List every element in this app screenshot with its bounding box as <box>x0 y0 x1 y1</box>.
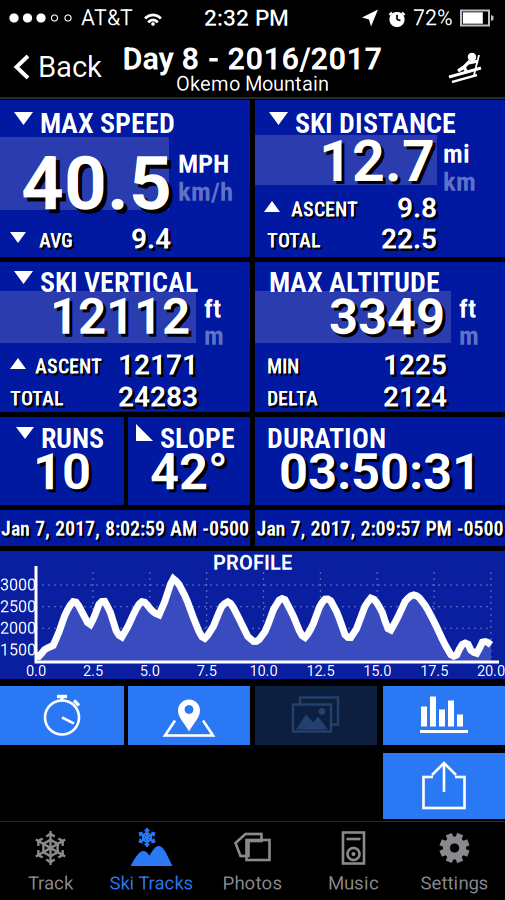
staticText: 9.8 <box>397 192 437 224</box>
staticText: 1225 <box>383 349 447 381</box>
staticText: 3349 <box>329 287 445 347</box>
staticText: 9.4 <box>131 223 171 255</box>
staticText: MAX SPEED <box>40 107 175 140</box>
staticText: 40.5 <box>25 144 176 231</box>
staticText: 2:32 PM <box>204 5 289 31</box>
staticText: 12.7 <box>319 128 435 195</box>
staticText: 72% <box>413 5 453 30</box>
staticText: RUNS <box>41 422 104 455</box>
staticText: ASCENT <box>293 200 360 223</box>
staticText: Jan 7, 2017, 8:02:59 AM -0500 <box>1 517 249 541</box>
staticText: TOTAL <box>267 229 321 252</box>
staticText: DURATION <box>267 422 386 455</box>
staticText: TOTAL <box>12 389 66 412</box>
staticText: 7.5 <box>197 662 217 680</box>
staticText: 24283 <box>118 381 198 413</box>
staticText: DELTA <box>269 389 320 412</box>
staticText: 0.0 <box>26 662 46 680</box>
staticText: Jan 7, 2017, 2:09:57 PM -0500 <box>258 519 505 543</box>
staticText: 3000 <box>0 576 36 594</box>
staticText: MIN <box>269 357 301 380</box>
staticText: TOTAL <box>10 387 64 410</box>
button[interactable]: Music <box>303 822 404 900</box>
button[interactable]: Share <box>383 753 505 819</box>
staticText: 10 <box>33 442 91 502</box>
button[interactable]: Map <box>128 686 250 745</box>
staticText: 15.0 <box>363 662 391 680</box>
staticText: ASCENT <box>291 198 358 221</box>
staticText: 12171 <box>120 351 200 384</box>
staticText: 12171 <box>118 349 198 381</box>
staticText: 12112 <box>53 291 193 349</box>
staticText: Jan 7, 2017, 2:09:57 PM -0500 <box>256 517 503 541</box>
staticText: km/h <box>178 176 233 207</box>
staticText: AT&T <box>81 5 133 30</box>
staticText: Track <box>28 872 73 894</box>
button[interactable]: Photos <box>202 822 303 900</box>
staticText: 2124 <box>385 383 449 416</box>
staticText: 10 <box>36 445 94 505</box>
staticText: AVG <box>41 231 75 254</box>
staticText: 12.5 <box>306 662 334 680</box>
staticText: Back <box>38 50 102 84</box>
staticText: 17.5 <box>420 662 448 680</box>
staticText: mi <box>443 138 470 169</box>
staticText: ft <box>204 293 221 324</box>
staticText: MAX ALTITUDE <box>269 266 440 299</box>
staticText: 03:50:31 <box>279 442 481 502</box>
staticText: Ski Tracks <box>109 872 193 894</box>
staticText: Jan 7, 2017, 8:02:59 AM -0500 <box>3 519 251 543</box>
button[interactable]: Settings <box>404 822 505 900</box>
staticText: ASCENT <box>35 355 102 378</box>
staticText: 24283 <box>120 383 200 416</box>
staticText: Okemo Mountain <box>176 72 329 96</box>
staticText: MPH <box>178 148 229 179</box>
button[interactable]: Charts <box>383 686 505 745</box>
staticText: 03:50:31 <box>282 445 484 505</box>
staticText: 3349 <box>332 290 448 350</box>
staticText: 12112 <box>50 288 190 346</box>
staticText: 42° <box>153 445 231 505</box>
staticText: 2124 <box>383 381 447 413</box>
staticText: 1500 <box>0 641 36 659</box>
button[interactable]: Back <box>0 36 114 98</box>
button[interactable]: Photos <box>255 686 377 745</box>
staticText: km <box>443 166 476 197</box>
button[interactable]: Statistics <box>0 686 124 745</box>
staticText: 2000 <box>0 619 36 638</box>
staticText: 20.0 <box>477 662 505 680</box>
staticText: 9.8 <box>399 194 439 227</box>
staticText: MIN <box>267 355 299 378</box>
staticText: SLOPE <box>160 422 235 455</box>
staticText: m <box>459 320 479 351</box>
staticText: 12.7 <box>322 131 438 198</box>
staticText: 10.0 <box>249 662 277 680</box>
staticText: Day 8 - 2016/2017 <box>122 41 382 77</box>
button[interactable]: Ski Tracks <box>101 822 202 900</box>
staticText: ft <box>459 293 476 324</box>
staticText: Music <box>328 872 379 894</box>
staticText: 2500 <box>0 597 36 616</box>
staticText: 42° <box>150 442 228 502</box>
staticText: TOTAL <box>269 231 323 254</box>
staticText: SKI VERTICAL <box>40 266 198 299</box>
button[interactable]: Track <box>0 822 101 900</box>
staticText: Photos <box>222 872 282 894</box>
staticText: m <box>204 320 224 351</box>
staticText: 5.0 <box>140 662 160 680</box>
staticText: AVG <box>39 229 73 252</box>
button[interactable]: Ski run <box>445 36 505 98</box>
staticText: 2.5 <box>83 662 103 680</box>
staticText: 22.5 <box>383 225 439 258</box>
staticText: ASCENT <box>37 357 104 380</box>
staticText: Settings <box>420 872 488 894</box>
staticText: 22.5 <box>381 223 437 255</box>
staticText: 40.5 <box>21 140 172 227</box>
staticText: PROFILE <box>213 551 292 575</box>
staticText: 1225 <box>385 351 449 384</box>
staticText: DELTA <box>267 387 318 410</box>
staticText: SKI DISTANCE <box>295 107 456 140</box>
staticText: 9.4 <box>133 225 173 258</box>
